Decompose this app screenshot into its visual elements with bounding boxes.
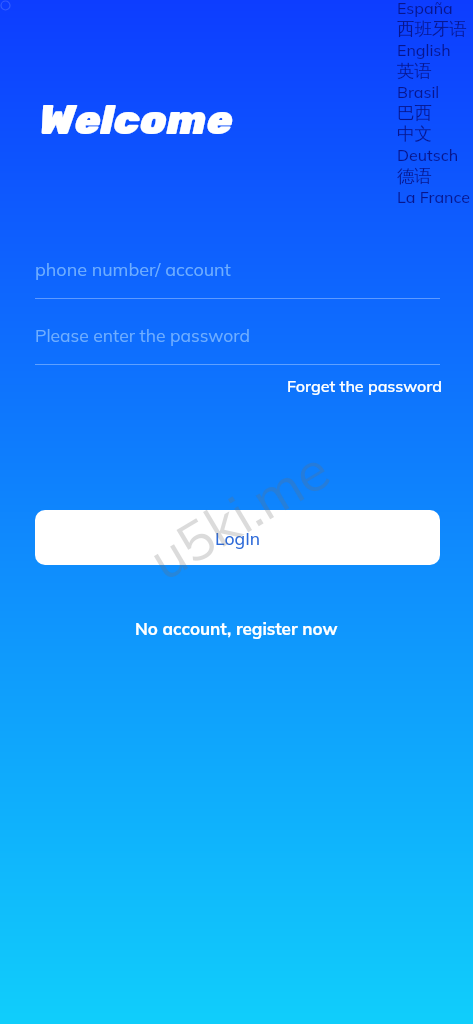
button[interactable]: LogIn [35, 510, 440, 565]
button[interactable]: La France [397, 186, 471, 207]
button[interactable]: 中文 [397, 123, 432, 144]
staticText: Welcome [39, 95, 233, 145]
staticText: 中文 [397, 123, 432, 144]
staticText: Brasil [397, 82, 440, 102]
staticText: España [397, 0, 453, 18]
staticText: 德语 [397, 165, 432, 186]
staticText: LogIn [215, 527, 261, 549]
staticText: La France [397, 187, 471, 207]
button[interactable]: Forget the password [287, 376, 442, 396]
button[interactable]: 德语 [397, 165, 432, 186]
staticText: 英语 [397, 60, 432, 81]
staticText: English [397, 40, 451, 60]
button[interactable]: Deutsch [397, 144, 459, 165]
button[interactable]: No account, register now [135, 618, 338, 639]
staticText: phone number/ account [35, 258, 231, 281]
staticText: Please enter the password [35, 324, 251, 346]
staticText: 巴西 [397, 102, 432, 123]
button[interactable]: English [397, 39, 451, 60]
staticText: Deutsch [397, 145, 459, 165]
button[interactable]: España [397, 0, 453, 18]
button[interactable]: 巴西 [397, 102, 432, 123]
staticText: 西班牙语 [397, 18, 467, 39]
button[interactable]: 英语 [397, 60, 432, 81]
button[interactable]: Brasil [397, 81, 440, 102]
button[interactable]: 西班牙语 [397, 18, 467, 39]
staticText: u5ki.me [136, 434, 341, 594]
